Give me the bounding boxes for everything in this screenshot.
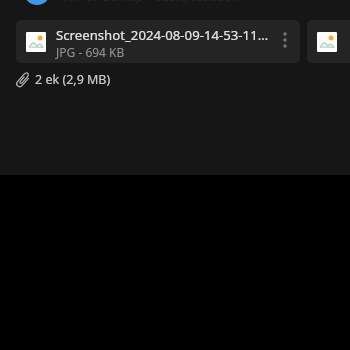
staticText: Screenshot_2024-08-09-14-53-11… — [56, 26, 269, 44]
button[interactable]: Ekran — [307, 20, 350, 63]
staticText: Ahmet Gökalp <ozel@test.com> — [57, 0, 251, 5]
staticText: JPG - 694 KB — [56, 44, 125, 60]
staticText: 2 ek (2,9 MB) — [35, 71, 111, 88]
button[interactable]: Screenshot_2024-08-09-14-53-11… — [16, 20, 300, 63]
button[interactable]: More options — [272, 20, 300, 63]
other: Sender avatar — [24, 0, 50, 5]
